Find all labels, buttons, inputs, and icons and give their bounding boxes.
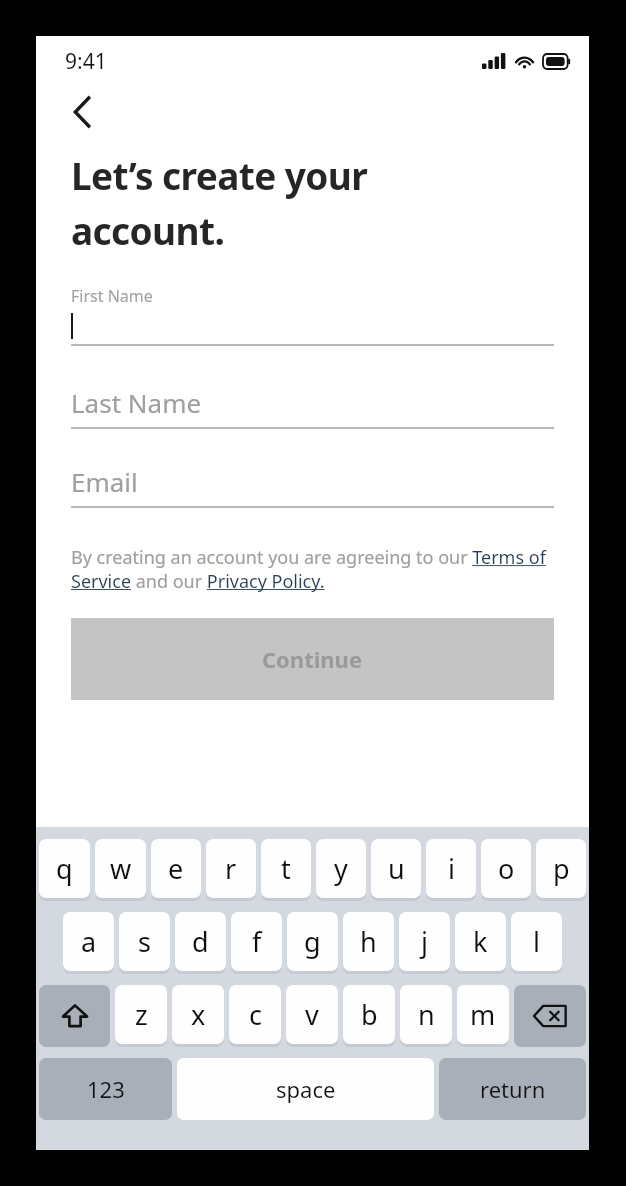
button[interactable]: x [172,985,224,1044]
button[interactable]: r [206,839,256,898]
button[interactable]: w [95,839,146,898]
staticText: j [421,923,428,960]
button[interactable]: s [119,912,170,971]
staticText: d [192,923,209,960]
button[interactable]: Email [71,464,554,508]
staticText: r [225,850,237,887]
button[interactable]: By creating an account you are agreeing … [71,545,554,593]
staticText: account. [71,205,225,255]
staticText: 123 [87,1074,125,1104]
staticText: First Name [71,285,153,307]
button[interactable]: space [177,1058,434,1120]
button[interactable]: d [175,912,226,971]
button[interactable]: b [343,985,395,1044]
button[interactable]: c [229,985,281,1044]
staticText: Let’s create your [71,150,368,200]
staticText: space [276,1074,336,1104]
staticText: u [388,850,405,887]
button[interactable]: u [371,839,421,898]
button[interactable]: h [343,912,394,971]
button[interactable]: Backspace [514,985,586,1047]
staticText: c [249,996,262,1033]
staticText: Continue [262,644,363,674]
button[interactable]: p [536,839,586,898]
staticText: w [110,850,132,887]
staticText: 9:41 [65,47,107,76]
button[interactable]: n [400,985,452,1044]
button[interactable]: t [261,839,311,898]
staticText: return [480,1074,546,1104]
staticText: s [138,923,151,960]
button[interactable]: k [455,912,506,971]
staticText: b [361,996,378,1033]
button[interactable]: First Name [71,285,554,346]
button[interactable]: l [511,912,562,971]
button[interactable]: Continue [71,618,554,700]
staticText: n [418,996,435,1033]
staticText: p [553,850,570,887]
staticText: f [252,923,262,960]
staticText: t [281,850,291,887]
button[interactable]: e [151,839,201,898]
staticText: v [305,996,319,1033]
button[interactable]: f [231,912,282,971]
staticText: i [448,850,455,887]
button[interactable]: j [399,912,450,971]
staticText: o [498,850,515,887]
staticText: m [470,996,496,1033]
staticText: Email [71,464,138,499]
staticText: k [473,923,488,960]
staticText: z [135,996,148,1033]
button[interactable]: v [286,985,338,1044]
button[interactable]: 123 [39,1058,172,1120]
staticText: y [334,850,348,887]
button[interactable]: Last Name [71,385,554,429]
staticText: g [304,923,321,960]
button[interactable]: q [39,839,90,898]
staticText: a [81,923,97,960]
button[interactable]: Shift [39,985,110,1047]
button[interactable]: g [287,912,338,971]
staticText: x [191,996,206,1033]
staticText: By creating an account you are agreeing … [71,545,554,593]
staticText: q [56,850,73,887]
button[interactable]: a [63,912,114,971]
button[interactable]: m [457,985,509,1044]
button[interactable]: y [316,839,366,898]
button[interactable]: i [426,839,476,898]
button[interactable]: o [481,839,531,898]
button[interactable]: Back [56,86,108,138]
staticText: h [360,923,377,960]
staticText: e [168,850,184,887]
button[interactable]: z [115,985,167,1044]
staticText: Last Name [71,385,202,420]
staticText: l [533,923,540,960]
button[interactable]: return [439,1058,586,1120]
